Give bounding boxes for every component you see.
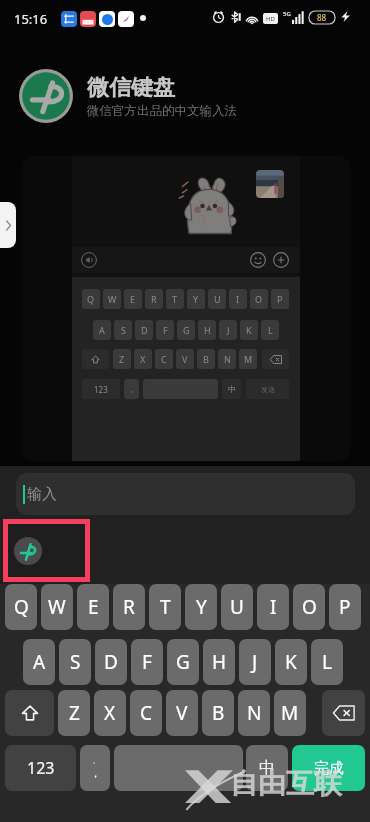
staticText: 完成 [314,759,344,778]
staticText: O [302,594,317,620]
staticText: Q [87,293,95,305]
staticText: 发送 [261,385,275,394]
staticText: R [151,293,157,305]
button[interactable]: K [275,639,307,685]
button[interactable]: U [221,584,253,630]
staticText: L [322,649,332,675]
button[interactable]: I [257,584,289,630]
staticText: U [214,293,221,305]
staticText: Q [14,594,29,620]
staticText: V [176,700,188,726]
button[interactable]: F [131,639,163,685]
staticText: S [121,324,126,336]
staticText: D [104,649,118,675]
button[interactable]: Shift [5,690,54,736]
staticText: X [104,700,116,726]
staticText: B [203,353,209,365]
button[interactable]: 完成 [292,745,365,791]
button[interactable]: O [293,584,325,630]
button[interactable]: Expand panel [0,202,16,248]
staticText: E [130,293,136,305]
staticText: I [270,594,277,620]
button[interactable]: V [166,690,198,736]
staticText: H [212,649,227,675]
staticText: M [281,700,299,726]
staticText: 123 [94,384,108,395]
staticText: Y [193,293,199,305]
staticText: A [99,324,105,336]
staticText: N [224,353,231,365]
staticText: T [160,594,171,620]
staticText: C [140,700,153,726]
staticText: 中 [259,758,275,778]
staticText: 123 [27,757,55,779]
staticText: D [141,324,148,336]
button[interactable]: J [239,639,271,685]
staticText: Y [196,594,207,620]
staticText: 5G [283,10,291,18]
button[interactable]: 输入 [16,473,355,515]
button[interactable]: A [23,639,55,685]
staticText: V [182,353,188,365]
staticText: E [88,594,99,620]
staticText: 。 [93,757,99,765]
staticText: P [339,594,351,620]
staticText: N [247,700,262,726]
staticText: R [123,594,135,620]
button[interactable]: G [167,639,199,685]
staticText: 88 [317,12,327,23]
staticText: F [163,324,168,336]
staticText: H [204,324,211,336]
button[interactable]: Backspace [322,690,365,736]
button[interactable]: N [238,690,270,736]
staticText: J [252,649,258,675]
staticText: 15:16 [14,10,48,28]
staticText: K [285,649,297,675]
button[interactable]: Z [58,690,90,736]
staticText: 自由互联 [230,766,342,801]
staticText: G [176,649,190,675]
button[interactable]: R [113,584,145,630]
staticText: U [230,594,244,620]
button[interactable]: B [202,690,234,736]
button[interactable] [114,745,243,791]
staticText: 微信官方出品的中文输入法 [87,103,237,119]
button[interactable]: S [59,639,91,685]
staticText: C [161,353,167,365]
button[interactable]: L [311,639,343,685]
staticText: M [244,353,253,365]
staticText: HD [266,15,275,23]
staticText: ， [90,766,101,780]
staticText: L [268,324,273,336]
staticText: I [236,293,240,305]
button[interactable]: WeChat keyboard [14,537,42,565]
staticText: G [183,324,190,336]
staticText: F [142,649,152,675]
staticText: A [33,649,46,675]
button[interactable]: P [329,584,361,630]
button[interactable]: W [41,584,73,630]
button[interactable]: E [77,584,109,630]
staticText: 中 [228,384,236,394]
button[interactable]: 中 [246,745,288,791]
button[interactable]: Y [185,584,217,630]
button[interactable]: C [130,690,162,736]
button[interactable]: M [274,690,306,736]
staticText: Z [69,700,80,726]
staticText: J [227,324,230,336]
staticText: W [108,293,117,305]
button[interactable]: Q [5,584,37,630]
staticText: K [246,324,252,336]
button[interactable]: 。 [80,745,110,791]
button[interactable]: T [149,584,181,630]
button[interactable]: X [94,690,126,736]
staticText: 输入 [27,485,57,504]
button[interactable]: D [95,639,127,685]
staticText: X [140,353,146,365]
button[interactable]: H [203,639,235,685]
staticText: S [70,649,81,675]
staticText: 微信键盘 [87,74,175,102]
staticText: W [48,594,66,620]
staticText: B [212,700,225,726]
button[interactable]: 123 [5,745,76,791]
